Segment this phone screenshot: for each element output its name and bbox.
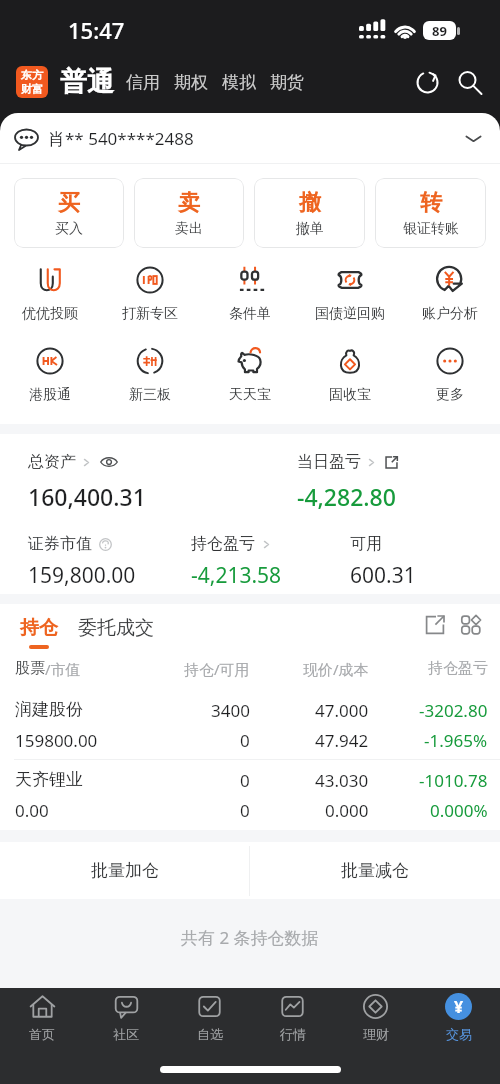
button[interactable]: 撤: [254, 178, 365, 248]
staticText: 可用: [350, 534, 382, 554]
staticText: 港股通: [29, 386, 71, 404]
staticText: 委托成交: [78, 616, 154, 640]
staticText: 总资产: [28, 452, 76, 472]
staticText: 撤: [299, 189, 321, 217]
staticText: 43.030: [315, 769, 369, 792]
staticText: 东方: [21, 68, 43, 82]
button[interactable]: 批量减仓: [250, 842, 500, 899]
staticText: 持仓: [20, 616, 58, 640]
button[interactable]: 固收宝: [300, 347, 400, 404]
staticText: 证券市值: [28, 534, 92, 554]
staticText: 期货: [270, 72, 304, 93]
staticText: -1.965%: [424, 729, 488, 752]
staticText: 0: [240, 729, 250, 752]
button[interactable]: 卖: [134, 178, 244, 248]
staticText: 国债逆回购: [315, 305, 385, 323]
staticText: 撤单: [296, 220, 324, 238]
staticText: 条件单: [229, 305, 271, 323]
staticText: ¥: [454, 996, 464, 1018]
button[interactable]: 打新专区: [100, 266, 200, 323]
button[interactable]: 条件单: [200, 266, 300, 323]
button[interactable]: 天齐锂业: [0, 760, 500, 829]
staticText: 财富: [21, 82, 43, 96]
button[interactable]: 优优投顾: [0, 266, 100, 323]
staticText: 股票: [15, 659, 45, 678]
staticText: 159,800.00: [28, 561, 136, 590]
staticText: 买: [58, 189, 80, 217]
staticText: 首页: [29, 1026, 55, 1042]
button[interactable]: 买: [14, 178, 124, 248]
staticText: 更多: [436, 386, 464, 404]
staticText: 固收宝: [329, 386, 371, 404]
staticText: 批量加仓: [91, 860, 159, 881]
staticText: 模拟: [222, 72, 256, 93]
staticText: 期权: [174, 72, 208, 93]
staticText: 0: [240, 799, 250, 822]
button[interactable]: 行情: [251, 993, 334, 1042]
button[interactable]: Refresh: [408, 63, 446, 101]
button[interactable]: ¥: [417, 993, 500, 1042]
staticText: -4,282.80: [297, 481, 396, 512]
staticText: 账户分析: [422, 305, 478, 323]
staticText: 600.31: [350, 561, 416, 590]
staticText: /市值: [45, 659, 81, 679]
staticText: 新三板: [129, 386, 171, 404]
button[interactable]: 港股通: [0, 347, 100, 404]
button[interactable]: 账户分析: [400, 266, 500, 323]
staticText: -4,213.58: [191, 561, 282, 590]
button[interactable]: 理财: [334, 993, 417, 1042]
staticText: 0.000: [325, 799, 369, 822]
staticText: 肖** 540****2488: [48, 127, 194, 150]
staticText: 润建股份: [15, 699, 83, 720]
button[interactable]: 持仓: [20, 616, 58, 649]
staticText: 当日盈亏: [297, 452, 361, 472]
button[interactable]: Full screen: [418, 608, 452, 642]
button[interactable]: Search: [450, 63, 488, 101]
staticText: 优优投顾: [22, 305, 78, 323]
staticText: 卖出: [175, 220, 203, 238]
staticText: 理财: [363, 1026, 389, 1042]
staticText: 15:47: [68, 15, 125, 45]
button[interactable]: 更多: [400, 347, 500, 404]
staticText: 3400: [211, 699, 250, 722]
staticText: 160,400.31: [28, 481, 146, 512]
button[interactable]: 转: [375, 178, 486, 248]
staticText: 持仓盈亏: [428, 659, 488, 678]
button[interactable]: Grid view: [454, 608, 488, 642]
staticText: 0.000%: [430, 799, 488, 822]
button[interactable]: 国债逆回购: [300, 266, 400, 323]
staticText: 信用: [126, 72, 160, 93]
staticText: 买入: [55, 220, 83, 238]
button[interactable]: 肖** 540****2488: [0, 113, 500, 163]
button[interactable]: 天天宝: [200, 347, 300, 404]
staticText: 天天宝: [229, 386, 271, 404]
staticText: 天齐锂业: [15, 769, 83, 790]
staticText: 普通: [60, 65, 114, 99]
staticText: 现价/成本: [303, 659, 369, 679]
staticText: 持仓/可用: [184, 659, 250, 679]
staticText: 行情: [280, 1026, 306, 1042]
staticText: 卖: [178, 189, 200, 217]
staticText: 交易: [446, 1026, 472, 1042]
staticText: 159800.00: [15, 729, 98, 752]
staticText: 47.942: [315, 729, 369, 752]
staticText: 社区: [113, 1026, 139, 1042]
button[interactable]: 批量加仓: [0, 842, 249, 899]
button[interactable]: 社区: [84, 993, 168, 1042]
staticText: 银证转账: [403, 220, 459, 238]
staticText: 89: [432, 22, 447, 40]
button[interactable]: 自选: [168, 993, 251, 1042]
button[interactable]: 润建股份: [0, 690, 500, 759]
staticText: -1010.78: [419, 769, 488, 792]
staticText: 47.000: [315, 699, 369, 722]
staticText: 0.00: [15, 799, 49, 822]
staticText: 转: [420, 189, 442, 217]
staticText: 0: [240, 769, 250, 792]
staticText: 自选: [197, 1026, 223, 1042]
button[interactable]: 委托成交: [78, 616, 154, 640]
staticText: 打新专区: [122, 305, 178, 323]
staticText: 共有 2 条持仓数据: [181, 926, 319, 949]
staticText: 持仓盈亏: [191, 534, 255, 554]
button[interactable]: 首页: [0, 993, 84, 1042]
button[interactable]: 新三板: [100, 347, 200, 404]
